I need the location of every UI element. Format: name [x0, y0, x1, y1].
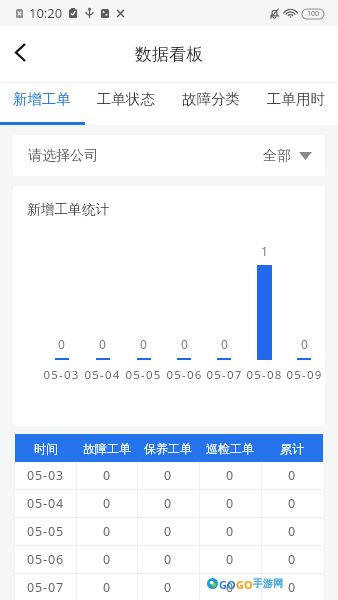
- staticText: 0: [103, 579, 111, 596]
- staticText: 故障工单: [83, 441, 131, 456]
- staticText: 巡检工单: [206, 441, 254, 456]
- staticText: 0: [288, 495, 296, 512]
- staticText: 0: [164, 579, 172, 596]
- staticText: 0: [58, 336, 65, 352]
- staticText: 0: [103, 467, 111, 484]
- staticText: 全部: [263, 147, 291, 165]
- staticText: 0: [103, 551, 111, 568]
- staticText: 0: [99, 336, 106, 352]
- staticText: 0: [103, 495, 111, 512]
- button[interactable]: 工单状态: [84, 83, 168, 125]
- staticText: 0: [226, 551, 234, 568]
- staticText: 1: [261, 243, 268, 259]
- staticText: 新增工单统计: [27, 201, 110, 218]
- staticText: 0: [226, 467, 234, 484]
- button[interactable]: 故障分类: [168, 83, 253, 125]
- staticText: 10:20: [29, 4, 63, 22]
- staticText: 05-04: [27, 495, 65, 512]
- staticText: GO: [236, 577, 253, 589]
- staticText: 05-05: [27, 523, 65, 540]
- staticText: 05-04: [84, 367, 121, 383]
- staticText: 100: [307, 9, 320, 19]
- staticText: 0: [181, 336, 188, 352]
- staticText: 05-06: [27, 551, 65, 568]
- staticText: 0: [288, 523, 296, 540]
- staticText: 0: [164, 551, 172, 568]
- staticText: 工单用时: [267, 90, 325, 108]
- button[interactable]: Back: [0, 34, 40, 74]
- staticText: 0: [226, 579, 234, 596]
- staticText: 05-08: [246, 367, 283, 383]
- staticText: 工单状态: [97, 90, 155, 108]
- button[interactable]: 请选择公司: [13, 135, 325, 176]
- staticText: 0: [288, 467, 296, 484]
- staticText: 05-03: [27, 467, 65, 484]
- staticText: 0: [164, 495, 172, 512]
- staticText: 05-09: [286, 367, 323, 383]
- staticText: 数据看板: [135, 44, 203, 65]
- staticText: 0: [103, 523, 111, 540]
- staticText: 请选择公司: [28, 147, 98, 165]
- staticText: 0: [221, 336, 228, 352]
- staticText: 0: [288, 551, 296, 568]
- staticText: 05-07: [27, 579, 65, 596]
- staticText: 累计: [280, 441, 304, 456]
- staticText: 0: [164, 523, 172, 540]
- staticText: 0: [140, 336, 147, 352]
- staticText: 保养工单: [144, 441, 192, 456]
- staticText: 0: [226, 495, 234, 512]
- button[interactable]: 工单用时: [253, 83, 338, 125]
- staticText: 05-03: [43, 367, 80, 383]
- staticText: 0: [288, 579, 296, 596]
- staticText: 新增工单: [13, 90, 71, 108]
- staticText: 05-06: [166, 367, 203, 383]
- staticText: 05-07: [206, 367, 243, 383]
- staticText: 0: [164, 467, 172, 484]
- staticText: 时间: [34, 441, 58, 456]
- staticText: 故障分类: [182, 90, 240, 108]
- staticText: 手游网: [253, 577, 283, 589]
- staticText: 0: [301, 336, 308, 352]
- staticText: 05-05: [125, 367, 162, 383]
- staticText: 0: [226, 523, 234, 540]
- staticText: GO: [219, 577, 236, 589]
- button[interactable]: 新增工单: [0, 83, 84, 125]
